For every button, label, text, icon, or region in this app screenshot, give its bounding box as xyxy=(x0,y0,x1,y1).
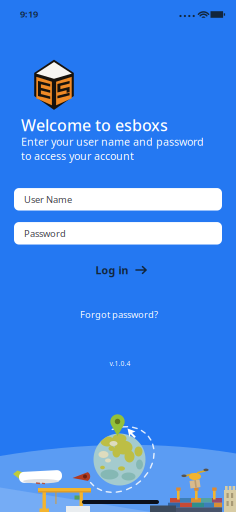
staticText: Forgot password? xyxy=(80,308,158,321)
staticText: Log in xyxy=(95,263,128,277)
staticText: User Name xyxy=(24,193,72,205)
staticText: Password xyxy=(24,227,66,239)
staticText: v.1.0.4 xyxy=(109,359,130,368)
staticText: to access your account xyxy=(21,149,134,163)
staticText: Welcome to esboxs xyxy=(21,114,168,136)
staticText: 9:19 xyxy=(20,8,38,20)
staticText: Enter your user name and password xyxy=(21,134,204,149)
